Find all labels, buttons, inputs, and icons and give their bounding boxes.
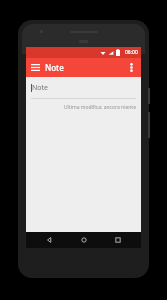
staticText: Note	[32, 83, 49, 93]
button[interactable]: More options	[122, 58, 141, 77]
button[interactable]: Recent apps	[106, 232, 130, 248]
staticText: Note	[45, 62, 64, 73]
button[interactable]: Home	[72, 232, 96, 248]
staticText: 06:00	[125, 49, 138, 56]
button[interactable]: Back	[37, 232, 61, 248]
button[interactable]: Open navigation menu	[26, 58, 45, 77]
button[interactable]: Note	[31, 83, 136, 93]
staticText: Ultima modifica: ancora niente	[63, 104, 136, 111]
